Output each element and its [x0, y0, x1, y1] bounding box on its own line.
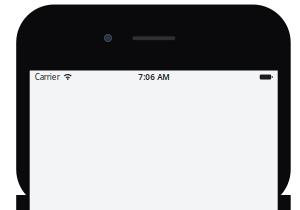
staticText: Carrier — [35, 72, 60, 82]
staticText: 7:06 AM — [138, 72, 169, 82]
